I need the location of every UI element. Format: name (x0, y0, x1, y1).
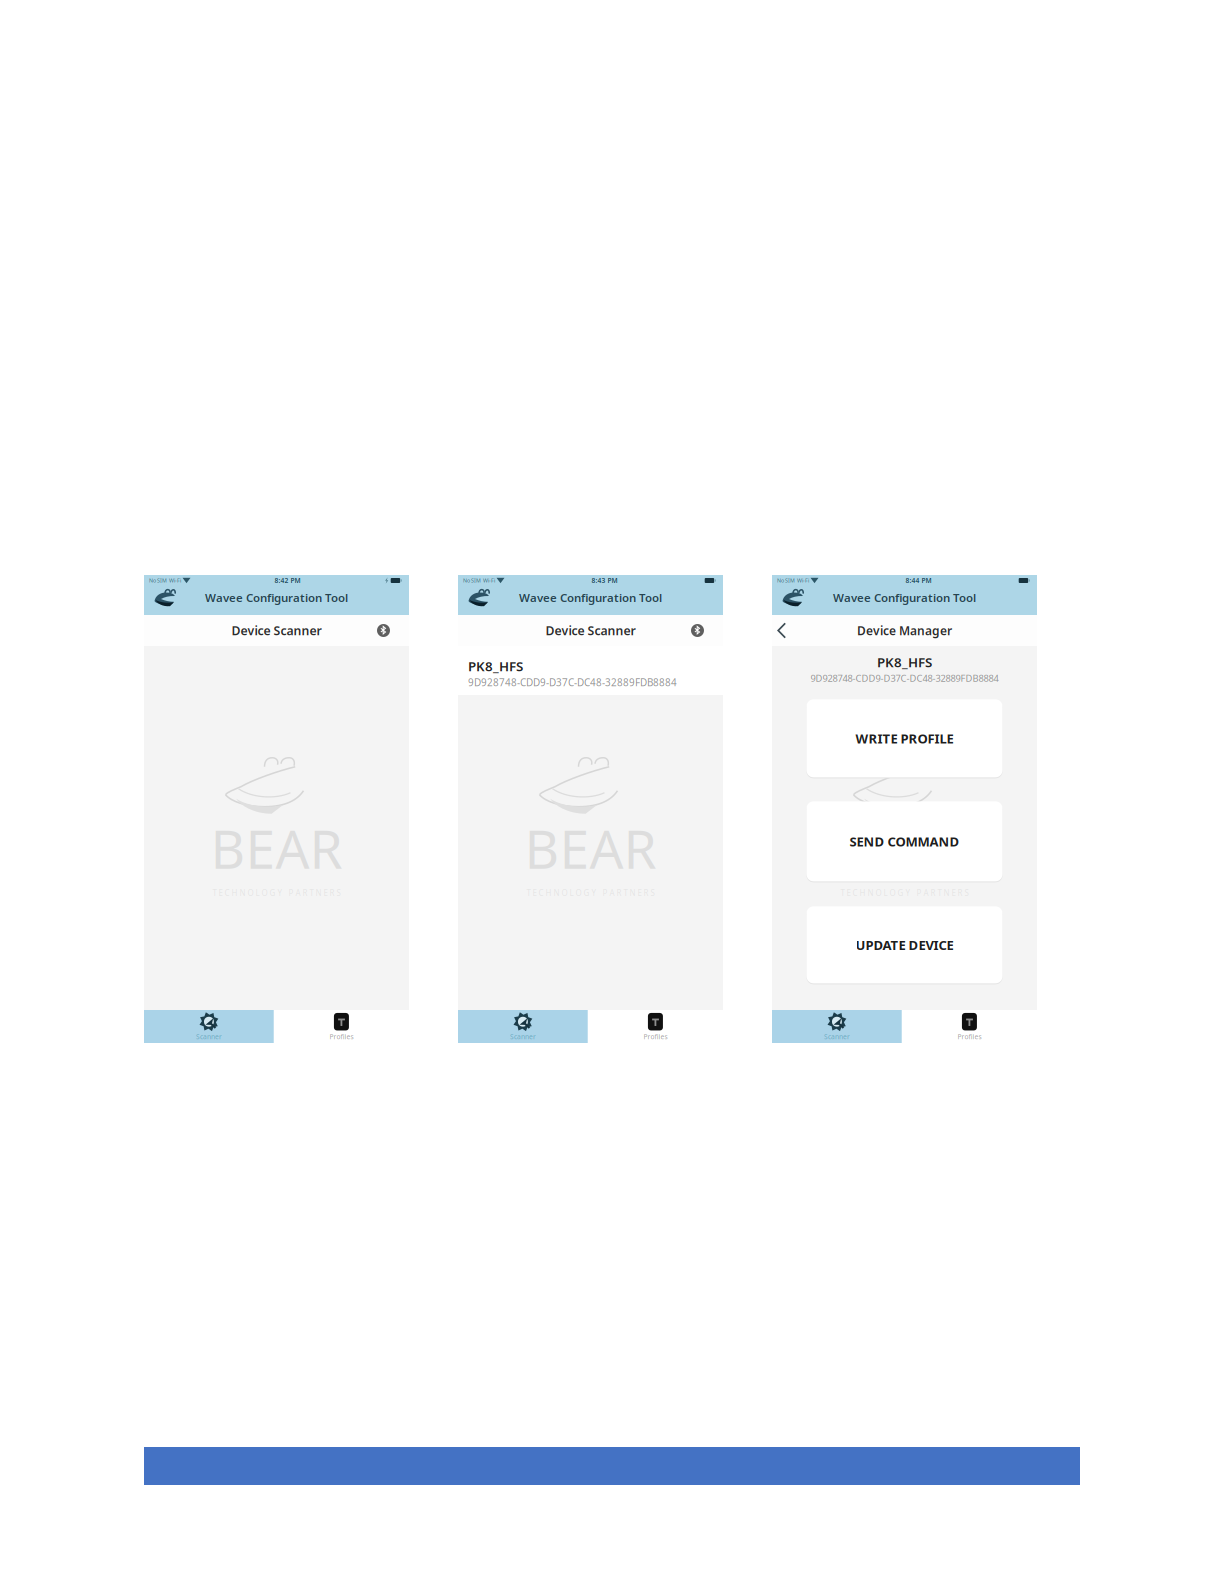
staticText: Profiles (643, 1032, 667, 1041)
staticText: BEAR (210, 812, 342, 884)
staticText: Wi-Fi (483, 577, 495, 584)
button[interactable]: Profiles (902, 1010, 1037, 1043)
staticText: Scanner (510, 1032, 536, 1041)
staticText: PK8_HFS (877, 653, 932, 671)
staticText: Profiles (329, 1032, 353, 1041)
button[interactable]: SEND COMMAND (805, 800, 1003, 882)
button[interactable]: Scanner (144, 1010, 274, 1043)
staticText: 8:43 PM (592, 576, 618, 585)
staticText: 8:42 PM (275, 576, 301, 585)
staticText: PK8_HFS (468, 657, 523, 675)
staticText: 9D928748-CDD9-D37C-DC48-32889FDB8884 (810, 672, 998, 684)
staticText: Device Scanner (231, 622, 321, 639)
staticText: BEAR (838, 812, 970, 884)
staticText: WRITE PROFILE (855, 729, 953, 747)
staticText: Wavee Configuration Tool (519, 590, 662, 605)
staticText: T E C H N O L O G Y P A R T N E R S (212, 887, 340, 898)
staticText: 9D928748-CDD9-D37C-DC48-32889FDB8884 (468, 676, 677, 689)
staticText: T E C H N O L O G Y P A R T N E R S (840, 887, 968, 898)
staticText: Device Scanner (545, 622, 635, 639)
staticText: T E C H N O L O G Y P A R T N E R S (526, 887, 654, 898)
button[interactable]: Profiles (274, 1010, 409, 1043)
staticText: No SIM (463, 577, 481, 584)
button[interactable]: Bluetooth (686, 615, 709, 646)
staticText: Wi-Fi (169, 577, 181, 584)
staticText: SEND COMMAND (849, 832, 959, 850)
staticText: Device Manager (857, 622, 952, 639)
staticText: No SIM (777, 577, 795, 584)
staticText: Wi-Fi (797, 577, 809, 584)
button[interactable]: PK8_HFS (458, 646, 723, 695)
button[interactable]: Scanner (458, 1010, 588, 1043)
button[interactable]: WRITE PROFILE (805, 698, 1003, 778)
staticText: Scanner (196, 1032, 222, 1041)
button[interactable]: Profiles (588, 1010, 723, 1043)
button[interactable]: UPDATE DEVICE (805, 905, 1003, 984)
staticText: BEAR (524, 812, 656, 884)
button[interactable]: Back (773, 615, 790, 646)
staticText: No SIM (149, 577, 167, 584)
staticText: Wavee Configuration Tool (833, 590, 976, 605)
staticText: Scanner (824, 1032, 850, 1041)
button[interactable]: Scanner (772, 1010, 902, 1043)
staticText: UPDATE DEVICE (855, 936, 953, 954)
staticText: Profiles (957, 1032, 981, 1041)
staticText: 8:44 PM (906, 576, 932, 585)
button[interactable]: Bluetooth (372, 615, 395, 646)
staticText: Wavee Configuration Tool (205, 590, 348, 605)
